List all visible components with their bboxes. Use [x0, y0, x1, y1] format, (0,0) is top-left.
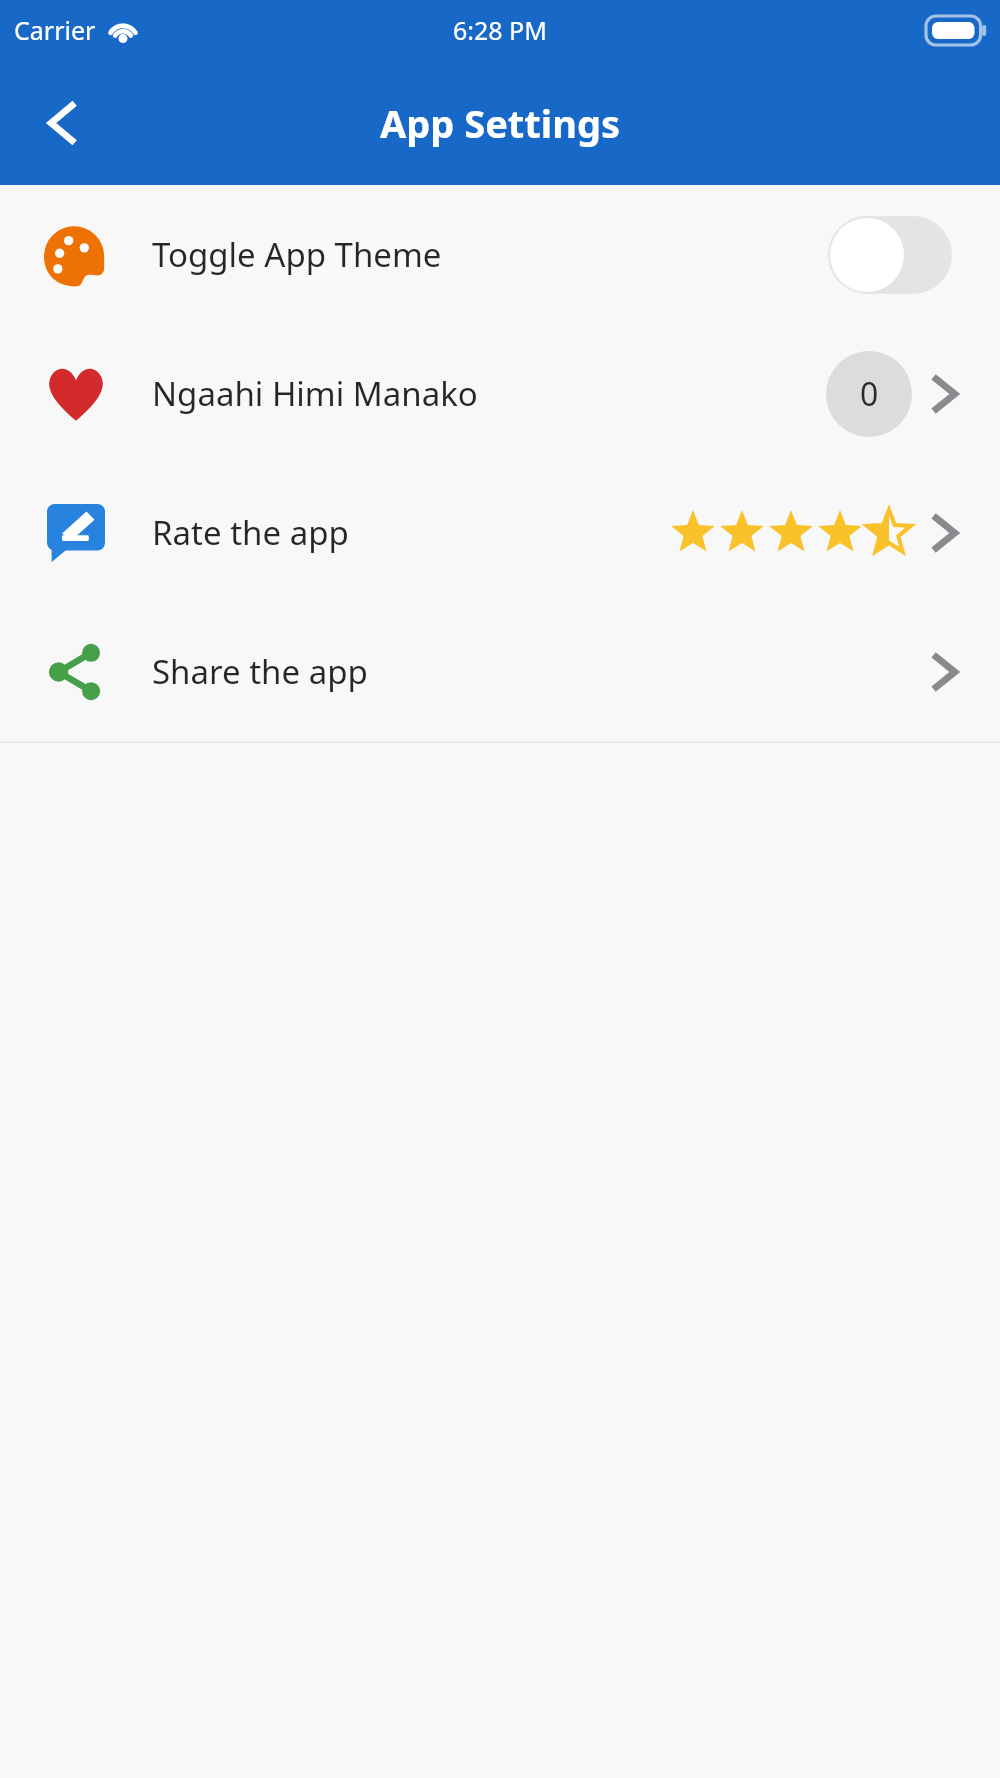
button[interactable]: Back	[24, 85, 100, 161]
staticText: Share the app	[152, 649, 368, 694]
staticText: Ngaahi Himi Manako	[152, 371, 478, 416]
staticText: 0	[860, 372, 879, 416]
staticText: Toggle App Theme	[152, 232, 442, 277]
staticText: Rate the app	[152, 510, 349, 555]
button[interactable]: Rate the app	[0, 463, 1000, 602]
button[interactable]: Ngaahi Himi Manako	[0, 324, 1000, 463]
button[interactable]: Toggle App Theme	[0, 185, 1000, 324]
staticText: Carrier	[14, 13, 96, 47]
staticText: 6:28 PM	[453, 13, 547, 47]
button[interactable]: Toggle App Theme	[828, 216, 952, 294]
button[interactable]: Share the app	[0, 602, 1000, 741]
staticText: App Settings	[380, 97, 620, 149]
